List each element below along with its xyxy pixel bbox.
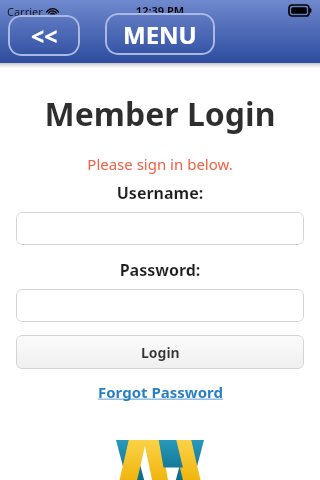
staticText: Password: [0, 259, 320, 281]
staticText: 12:39 PM [0, 3, 320, 18]
button[interactable]: MENU [105, 13, 215, 55]
staticText: Carrier [7, 4, 43, 19]
staticText: MENU [123, 18, 197, 51]
staticText: Username: [0, 182, 320, 204]
staticText: Login [141, 343, 180, 362]
staticText: Member Login [0, 92, 320, 136]
staticText: Forgot Password [98, 382, 223, 402]
button[interactable]: Forgot Password [0, 382, 320, 402]
button[interactable]: Login [16, 335, 304, 369]
button[interactable]: Username [16, 212, 304, 245]
button[interactable]: Back [8, 15, 80, 56]
button[interactable]: Password [16, 289, 304, 322]
staticText: Please sign in below. [0, 154, 320, 174]
staticText: << [31, 20, 58, 51]
